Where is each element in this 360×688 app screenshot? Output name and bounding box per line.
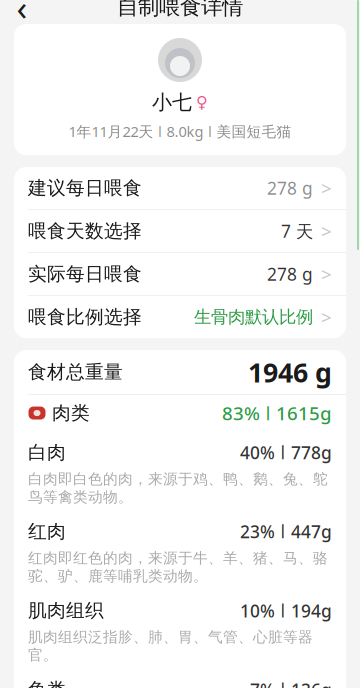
- button[interactable]: 喂食比例选择: [14, 296, 346, 338]
- staticText: 肌肉组织泛指胗、肺、胃、气管、心脏等器官。: [28, 628, 313, 664]
- button[interactable]: 实际每日喂食: [14, 253, 346, 296]
- staticText: ‹: [16, 0, 27, 30]
- staticText: 7 天: [281, 219, 313, 242]
- staticText: 278 g: [267, 176, 313, 199]
- staticText: 白肉即白色的肉，来源于鸡、鸭、鹅、兔、鸵鸟等禽类动物。: [28, 470, 328, 506]
- staticText: ♀: [196, 93, 208, 111]
- button[interactable]: 喂食天数选择: [14, 210, 346, 253]
- staticText: 83% ǀ 1615g: [222, 401, 332, 425]
- staticText: >: [321, 262, 332, 286]
- staticText: 7% ǀ 136g: [250, 678, 332, 688]
- staticText: 喂食比例选择: [28, 306, 142, 328]
- button[interactable]: 建议每日喂食: [14, 167, 346, 210]
- staticText: >: [321, 219, 332, 243]
- staticText: 食材总重量: [28, 361, 123, 383]
- button[interactable]: Back: [0, 0, 44, 18]
- staticText: 白肉: [28, 441, 66, 464]
- staticText: 10% ǀ 194g: [240, 599, 332, 622]
- staticText: 1年11月22天 ǀ 8.0kg ǀ 美国短毛猫: [68, 122, 291, 141]
- staticText: 小七: [152, 90, 192, 115]
- staticText: >: [321, 176, 332, 200]
- staticText: 鱼类: [28, 678, 66, 688]
- staticText: 肉类: [52, 402, 90, 424]
- staticText: 23% ǀ 447g: [240, 520, 332, 543]
- staticText: 肌肉组织: [28, 599, 104, 622]
- staticText: 实际每日喂食: [28, 263, 142, 285]
- staticText: 建议每日喂食: [28, 177, 142, 199]
- staticText: 自制喂食详情: [117, 0, 243, 20]
- staticText: 喂食天数选择: [28, 220, 142, 242]
- staticText: 红肉: [28, 520, 66, 543]
- staticText: >: [321, 305, 332, 329]
- staticText: 红肉即红色的肉，来源于牛、羊、猪、马、骆驼、驴、鹿等哺乳类动物。: [28, 549, 328, 585]
- staticText: 278 g: [267, 262, 313, 285]
- staticText: 40% ǀ 778g: [240, 441, 332, 464]
- staticText: 1946 g: [248, 354, 332, 390]
- staticText: 生骨肉默认比例: [194, 306, 313, 328]
